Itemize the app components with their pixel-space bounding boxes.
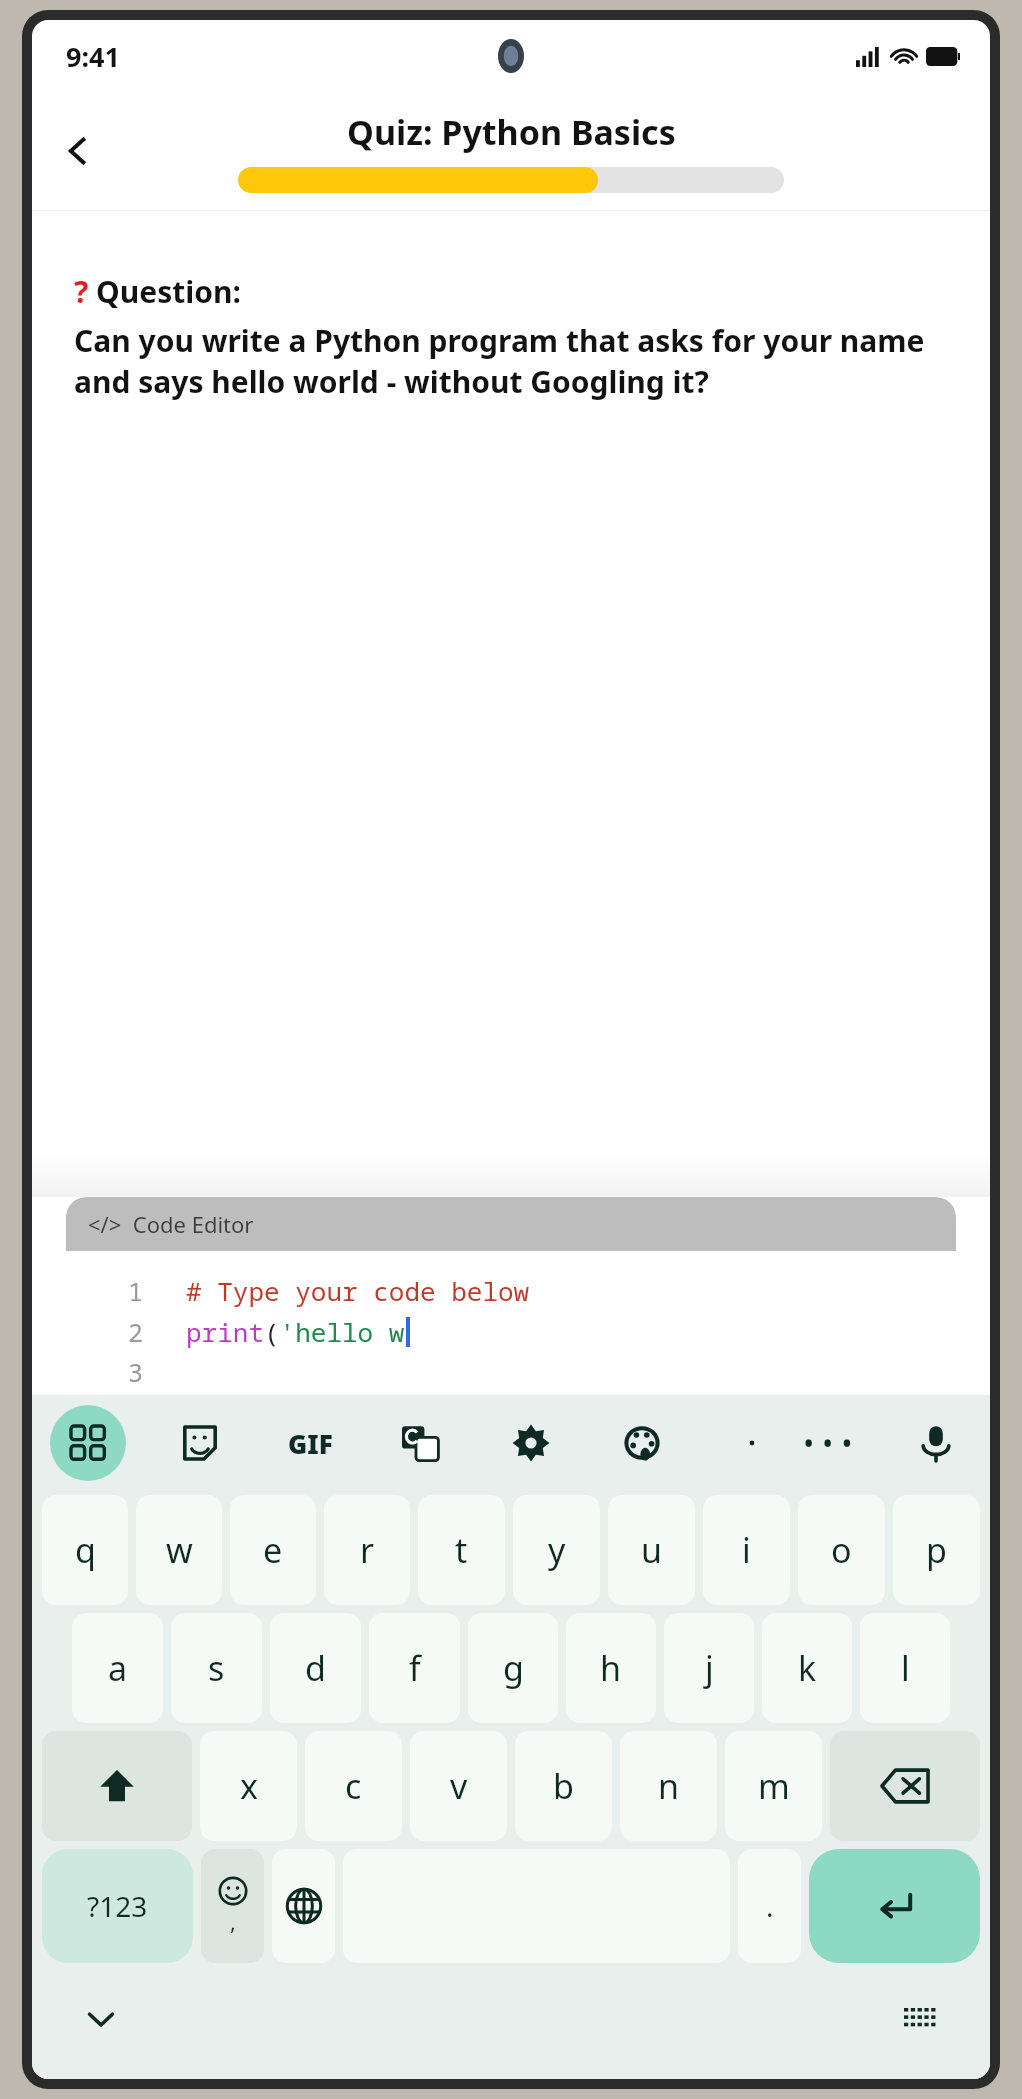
staticText: a xyxy=(108,1645,128,1691)
staticText: v xyxy=(450,1763,468,1809)
staticText: o xyxy=(831,1527,852,1573)
button[interactable]: k xyxy=(762,1613,852,1723)
button[interactable]: Back xyxy=(46,119,110,183)
staticText: w xyxy=(166,1527,193,1573)
button[interactable]: x xyxy=(200,1731,297,1841)
button[interactable]: g xyxy=(468,1613,558,1723)
button[interactable]: Emoji xyxy=(201,1849,264,1963)
button[interactable]: Hide keyboard xyxy=(66,1984,136,2054)
staticText: ?123 xyxy=(87,1887,148,1925)
staticText: g xyxy=(503,1645,524,1691)
staticText: Can you write a Python program that asks… xyxy=(74,320,948,402)
staticText: m xyxy=(758,1763,790,1809)
button[interactable]: n xyxy=(620,1731,717,1841)
staticText: d xyxy=(305,1645,326,1691)
button[interactable]: b xyxy=(515,1731,612,1841)
button[interactable]: a xyxy=(72,1613,163,1723)
button[interactable]: Settings xyxy=(495,1407,567,1479)
staticText: j xyxy=(705,1645,714,1691)
button[interactable]: s xyxy=(171,1613,262,1723)
staticText: l xyxy=(901,1645,910,1691)
staticText: , xyxy=(230,1906,236,1936)
button[interactable]: Keyboard switcher xyxy=(886,1984,956,2054)
staticText: x xyxy=(240,1763,258,1809)
staticText: h xyxy=(600,1645,622,1691)
button[interactable]: Toolbox xyxy=(50,1405,126,1481)
button[interactable]: Stickers xyxy=(164,1407,236,1479)
button[interactable]: r xyxy=(324,1495,410,1605)
staticText: u xyxy=(641,1527,663,1573)
staticText: # Type your code below xyxy=(186,1273,530,1308)
button[interactable]: Translate xyxy=(384,1407,456,1479)
staticText: r xyxy=(360,1527,375,1573)
button[interactable]: v xyxy=(410,1731,507,1841)
button[interactable]: o xyxy=(798,1495,885,1605)
staticText: e xyxy=(263,1527,283,1573)
button[interactable]: m xyxy=(725,1731,822,1841)
button[interactable]: u xyxy=(608,1495,695,1605)
button[interactable]: y xyxy=(513,1495,600,1605)
button[interactable]: ?123 xyxy=(42,1849,193,1963)
button[interactable]: j xyxy=(664,1613,754,1723)
staticText: f xyxy=(409,1645,421,1691)
button[interactable]: GIF xyxy=(275,1408,345,1478)
button[interactable]: q xyxy=(42,1495,128,1605)
staticText: 1 xyxy=(128,1274,144,1308)
button[interactable]: h xyxy=(566,1613,656,1723)
staticText: c xyxy=(345,1763,362,1809)
button[interactable]: w xyxy=(136,1495,222,1605)
button[interactable]: Theme xyxy=(606,1407,678,1479)
staticText: </> Code Editor xyxy=(88,1209,254,1239)
button[interactable]: Enter xyxy=(809,1849,980,1963)
staticText: 3 xyxy=(128,1355,144,1389)
button[interactable]: i xyxy=(703,1495,790,1605)
staticText: p xyxy=(926,1527,947,1573)
button[interactable]: Shift xyxy=(42,1731,192,1841)
button[interactable]: </> Code Editor xyxy=(66,1197,956,1251)
staticText: s xyxy=(208,1645,225,1691)
staticText: ? Question: xyxy=(74,271,241,312)
staticText: 9:41 xyxy=(66,38,120,75)
button[interactable]: p xyxy=(893,1495,980,1605)
button[interactable]: d xyxy=(270,1613,361,1723)
staticText: 2 xyxy=(128,1315,144,1349)
staticText: y xyxy=(548,1527,566,1573)
button[interactable] xyxy=(717,1408,787,1478)
staticText: n xyxy=(658,1763,680,1809)
button[interactable]: e xyxy=(230,1495,316,1605)
button[interactable]: t xyxy=(418,1495,505,1605)
staticText: b xyxy=(553,1763,574,1809)
staticText: . xyxy=(766,1887,774,1925)
button[interactable]: Backspace xyxy=(830,1731,980,1841)
staticText: GIF xyxy=(288,1426,333,1461)
staticText: Quiz: Python Basics xyxy=(347,109,676,155)
staticText: q xyxy=(75,1527,96,1573)
staticText: i xyxy=(742,1527,751,1573)
button[interactable]: Change language xyxy=(272,1849,335,1963)
button[interactable]: l xyxy=(860,1613,950,1723)
staticText: • • • xyxy=(803,1423,853,1464)
button[interactable]: c xyxy=(305,1731,402,1841)
staticText: t xyxy=(455,1527,468,1573)
button[interactable]: Voice input xyxy=(900,1407,972,1479)
staticText: k xyxy=(798,1645,817,1691)
button[interactable]: f xyxy=(369,1613,460,1723)
button[interactable]: . xyxy=(738,1849,801,1963)
staticText: print('hello w xyxy=(186,1314,405,1349)
